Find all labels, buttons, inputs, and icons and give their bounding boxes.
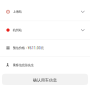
button[interactable]: 杭州站	[0, 21, 90, 39]
staticText: 乘客信息张先生	[13, 63, 34, 67]
staticText: 预估价格：¥611.00元	[13, 46, 44, 50]
staticText: 上海站	[13, 10, 22, 14]
button[interactable]: 确认用车信息	[2, 74, 88, 85]
staticText: 杭州站	[13, 28, 22, 32]
button[interactable]: 上海站	[0, 3, 90, 21]
staticText: 确认用车信息	[33, 78, 57, 83]
